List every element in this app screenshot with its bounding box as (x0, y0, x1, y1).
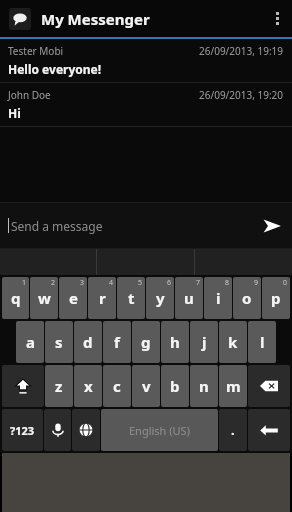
button[interactable]: h (161, 321, 189, 363)
button[interactable]: John Doe (0, 83, 292, 126)
staticText: z (55, 376, 63, 396)
staticText: e (69, 288, 78, 308)
button[interactable]: l (248, 321, 276, 363)
staticText: w (38, 288, 51, 308)
button[interactable]: m (219, 365, 247, 407)
staticText: Hello everyone! (8, 61, 102, 77)
staticText: a (26, 332, 35, 352)
staticText: Send a message (11, 218, 103, 234)
staticText: m (226, 376, 241, 396)
staticText: p (271, 288, 281, 308)
button[interactable]: u (175, 277, 203, 319)
button[interactable]: Backspace (248, 365, 290, 407)
staticText: 9 (254, 278, 259, 288)
staticText: 26/09/2013, 19:20 (199, 88, 284, 102)
button[interactable]: c (103, 365, 131, 407)
staticText: 0 (283, 278, 288, 288)
staticText: u (184, 288, 194, 308)
button[interactable]: j (190, 321, 218, 363)
staticText: John Doe (8, 88, 51, 102)
button[interactable]: g (132, 321, 160, 363)
staticText: v (142, 376, 151, 396)
staticText: g (141, 332, 151, 352)
button[interactable]: p (262, 277, 290, 319)
staticText: x (84, 376, 93, 396)
staticText: 5 (138, 278, 143, 288)
button[interactable]: English (US) (101, 409, 218, 451)
staticText: o (242, 288, 252, 308)
button[interactable]: f (103, 321, 131, 363)
button[interactable]: a (16, 321, 44, 363)
staticText: 8 (225, 278, 230, 288)
staticText: 4 (109, 278, 114, 288)
staticText: b (170, 376, 180, 396)
button[interactable]: e (59, 277, 87, 319)
staticText: 26/09/2013, 19:19 (199, 44, 284, 58)
button[interactable]: v (132, 365, 160, 407)
staticText: 7 (196, 278, 201, 288)
button[interactable]: ?123 (2, 409, 43, 451)
staticText: l (260, 332, 265, 352)
button[interactable]: Enter (248, 409, 290, 451)
button[interactable]: t (117, 277, 145, 319)
button[interactable]: Send (252, 206, 292, 246)
staticText: 2 (51, 278, 56, 288)
staticText: Hi (8, 105, 21, 121)
staticText: y (156, 288, 165, 308)
staticText: . (231, 421, 235, 439)
staticText: t (128, 288, 135, 308)
button[interactable]: Send a message (0, 203, 292, 248)
button[interactable]: b (161, 365, 189, 407)
staticText: s (55, 332, 63, 352)
staticText: i (216, 288, 221, 308)
staticText: English (US) (129, 423, 190, 438)
button[interactable]: r (88, 277, 116, 319)
button[interactable]: k (219, 321, 247, 363)
button[interactable]: App icon (9, 8, 31, 30)
button[interactable]: n (190, 365, 218, 407)
staticText: d (83, 332, 93, 352)
button[interactable]: o (233, 277, 261, 319)
button[interactable]: i (204, 277, 232, 319)
staticText: c (113, 376, 121, 396)
button[interactable]: q (2, 277, 29, 319)
button[interactable]: s (45, 321, 73, 363)
button[interactable]: More options (262, 0, 292, 37)
staticText: 3 (80, 278, 85, 288)
button[interactable]: y (146, 277, 174, 319)
button[interactable]: Change language (72, 409, 100, 451)
button[interactable]: Voice input (44, 409, 71, 451)
staticText: Tester Mobi (8, 44, 64, 58)
staticText: My Messenger (41, 9, 150, 29)
staticText: 6 (167, 278, 172, 288)
staticText: r (99, 288, 106, 308)
staticText: ?123 (10, 423, 35, 438)
button[interactable]: Shift (2, 365, 44, 407)
button[interactable]: Tester Mobi (0, 39, 292, 82)
staticText: k (228, 332, 238, 352)
staticText: j (202, 332, 207, 352)
button[interactable]: . (219, 409, 247, 451)
staticText: h (170, 332, 180, 352)
staticText: q (11, 288, 21, 308)
staticText: f (114, 332, 120, 352)
staticText: n (199, 376, 209, 396)
button[interactable]: x (74, 365, 102, 407)
button[interactable]: d (74, 321, 102, 363)
button[interactable]: w (30, 277, 58, 319)
button[interactable]: z (45, 365, 73, 407)
staticText: 1 (22, 278, 27, 288)
